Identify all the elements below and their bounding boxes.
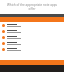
- button[interactable]: [0, 46, 64, 52]
- button[interactable]: [0, 34, 64, 40]
- staticText: Which of the appropriate note apps offer: [6, 3, 58, 11]
- button[interactable]: [0, 40, 64, 46]
- button[interactable]: [0, 28, 64, 34]
- button[interactable]: [0, 22, 64, 28]
